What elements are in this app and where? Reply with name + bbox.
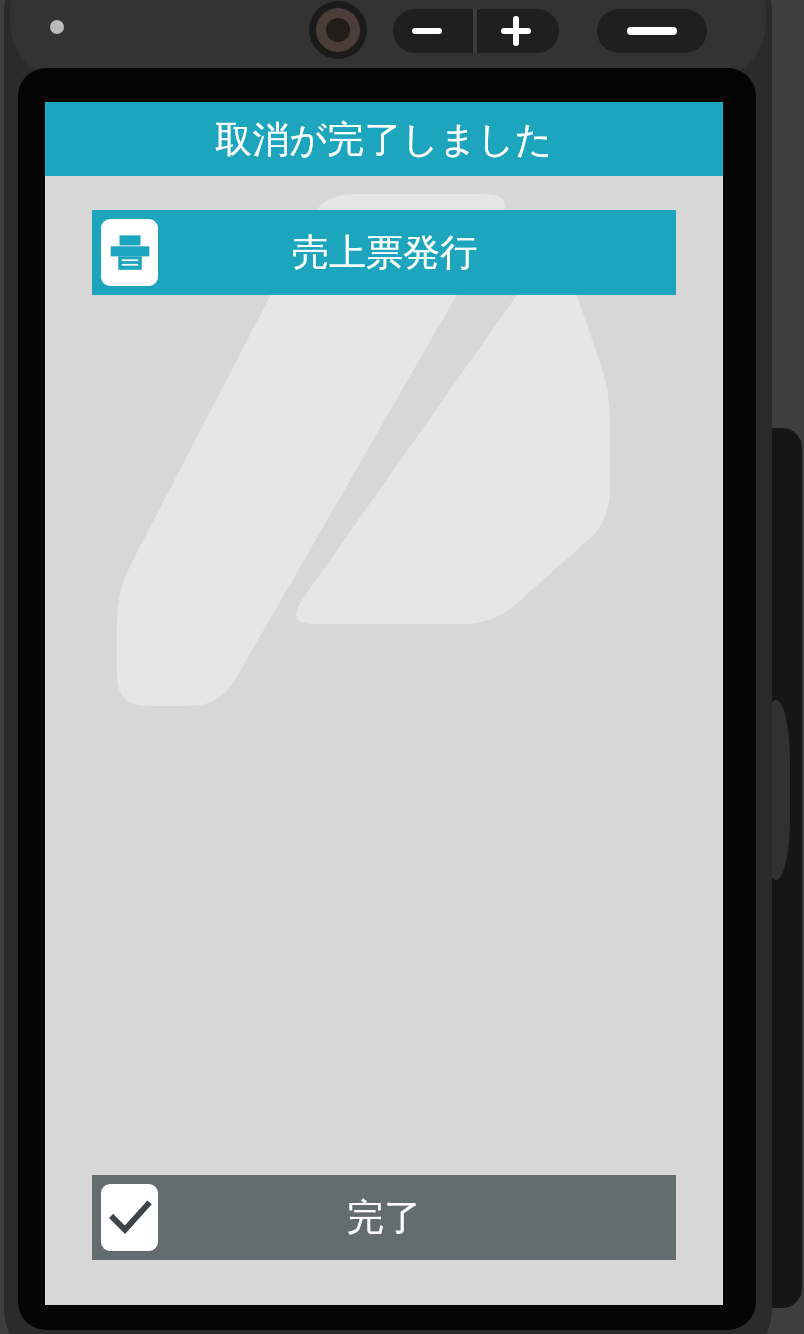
staticText: 売上票発行 [292,229,477,276]
other: Done [101,1184,158,1251]
button[interactable]: 売上票発行 [92,210,676,295]
other: Print receipt [101,219,158,286]
button[interactable]: 取消が完了しました [45,102,723,176]
button[interactable]: 完了 [92,1175,676,1260]
staticText: 取消が完了しました [215,116,553,163]
staticText: 完了 [347,1194,421,1241]
